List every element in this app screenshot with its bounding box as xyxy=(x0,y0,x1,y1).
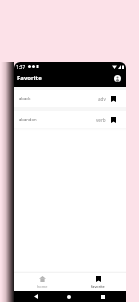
staticText: adv xyxy=(98,96,106,102)
staticText: home xyxy=(37,284,48,289)
button[interactable]: Bookmark aback xyxy=(109,95,117,103)
button[interactable]: abandon xyxy=(17,111,123,128)
button[interactable]: Back xyxy=(14,291,58,302)
staticText: abandon xyxy=(19,117,37,123)
staticText: favorite xyxy=(91,284,105,289)
staticText: verb xyxy=(96,117,106,123)
button[interactable]: home xyxy=(14,276,70,289)
staticText: aback xyxy=(19,96,31,102)
button[interactable]: Recents xyxy=(79,291,126,302)
button[interactable]: aback xyxy=(17,90,123,107)
button[interactable]: Bookmark abandon xyxy=(109,116,117,124)
staticText: 1:37 xyxy=(16,64,26,70)
button[interactable]: Home xyxy=(58,291,79,302)
button[interactable]: favorite xyxy=(70,276,126,289)
staticText: Favorite xyxy=(17,74,42,82)
button[interactable]: Account xyxy=(114,75,121,82)
